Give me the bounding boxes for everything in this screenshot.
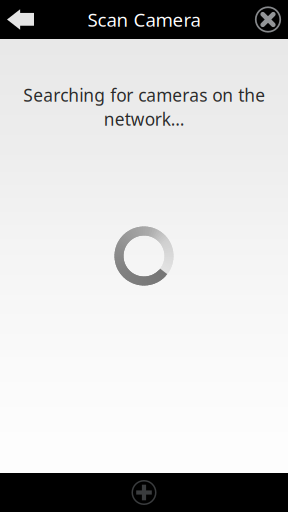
staticText: Searching for cameras on the network… [23,83,265,130]
button[interactable]: Back [0,0,54,39]
button[interactable]: Add camera [117,473,171,512]
button[interactable]: Close [248,0,288,39]
staticText: Scan Camera [87,7,200,32]
